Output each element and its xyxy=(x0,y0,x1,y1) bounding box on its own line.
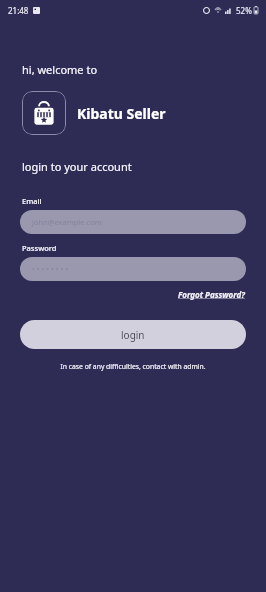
staticText: login to your account xyxy=(22,159,132,174)
button[interactable]: login xyxy=(20,320,246,349)
staticText: Forgot Password? xyxy=(178,289,245,300)
button[interactable]: john@example.com xyxy=(20,210,246,234)
staticText: Kibatu Seller xyxy=(77,104,166,123)
staticText: In case of any difficulties, contact wit… xyxy=(0,362,266,371)
button[interactable]: • • • • • • • • xyxy=(20,257,246,281)
staticText: john@example.com xyxy=(32,217,102,227)
staticText: Email xyxy=(22,196,42,206)
staticText: login xyxy=(121,328,145,342)
staticText: • • • • • • • • xyxy=(32,264,69,274)
button[interactable]: Forgot Password? xyxy=(176,287,247,302)
staticText: 52% xyxy=(236,5,252,16)
staticText: hi, welcome to xyxy=(22,62,98,77)
staticText: Password xyxy=(22,243,57,253)
staticText: 21:48 xyxy=(8,5,29,16)
